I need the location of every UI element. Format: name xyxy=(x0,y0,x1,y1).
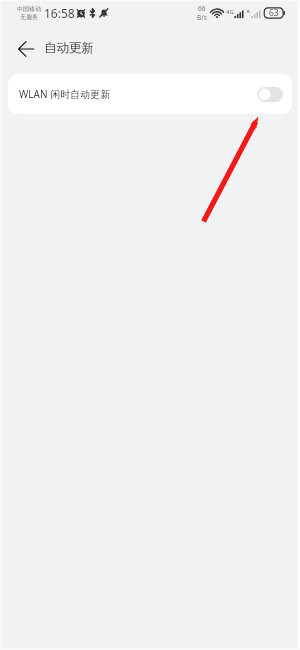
button[interactable]: WLAN idle auto update switch, off xyxy=(257,87,283,102)
staticText: B/s xyxy=(197,13,207,22)
staticText: 63 xyxy=(269,7,279,19)
staticText: 中国移动 xyxy=(17,5,41,13)
staticText: WLAN 闲时自动更新 xyxy=(19,87,111,101)
button[interactable]: Back xyxy=(9,32,42,65)
staticText: 4G xyxy=(226,8,234,16)
button[interactable]: WLAN 闲时自动更新 xyxy=(8,74,292,114)
staticText: 16:58 xyxy=(44,5,75,21)
staticText: 自动更新 xyxy=(44,40,94,56)
staticText: 无服务 xyxy=(20,13,38,21)
staticText: × xyxy=(246,7,251,17)
staticText: 66 xyxy=(198,4,206,13)
